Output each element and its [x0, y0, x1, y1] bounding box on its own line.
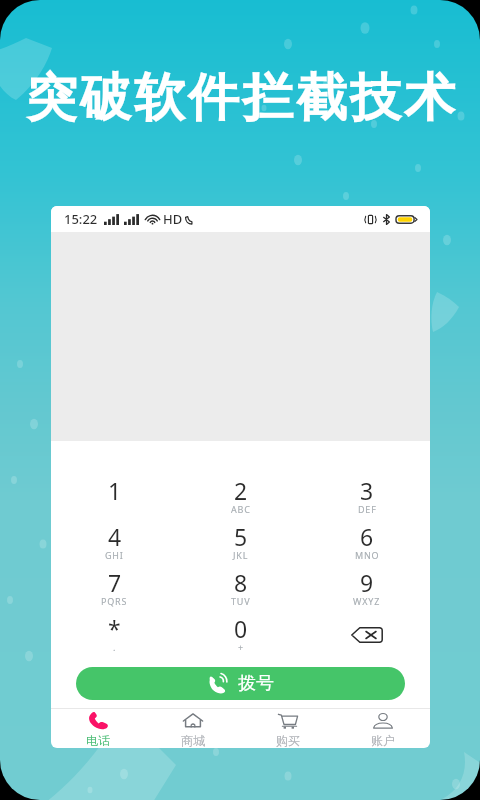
- button[interactable]: 7: [51, 567, 178, 613]
- staticText: 账户: [371, 733, 395, 748]
- button[interactable]: 0: [178, 613, 304, 659]
- button[interactable]: 8: [178, 567, 304, 613]
- other: Backspace: [351, 627, 383, 643]
- staticText: 7: [108, 567, 122, 598]
- staticText: .: [113, 641, 117, 653]
- staticText: 4: [108, 521, 122, 552]
- staticText: MNO: [355, 549, 380, 561]
- staticText: 拨号: [238, 672, 274, 695]
- button[interactable]: 商城: [145, 709, 240, 748]
- button[interactable]: Backspace: [304, 613, 430, 659]
- staticText: 购买: [276, 733, 300, 748]
- staticText: 9: [360, 567, 374, 598]
- button[interactable]: 1: [51, 475, 178, 521]
- staticText: 8: [234, 567, 248, 598]
- button[interactable]: 拨号: [76, 667, 405, 700]
- staticText: GHI: [105, 549, 124, 561]
- staticText: WXYZ: [353, 595, 381, 607]
- button[interactable]: 3: [304, 475, 430, 521]
- button[interactable]: 电话: [51, 709, 145, 748]
- button[interactable]: 2: [178, 475, 304, 521]
- button[interactable]: 账户: [335, 709, 430, 748]
- staticText: DEF: [358, 503, 377, 515]
- staticText: 3: [360, 475, 374, 506]
- staticText: 0: [234, 613, 248, 644]
- button[interactable]: 5: [178, 521, 304, 567]
- staticText: HD: [163, 210, 183, 228]
- staticText: 2: [234, 475, 248, 506]
- staticText: ABC: [231, 503, 251, 515]
- staticText: TUV: [231, 595, 251, 607]
- button[interactable]: 6: [304, 521, 430, 567]
- staticText: PQRS: [101, 595, 128, 607]
- button[interactable]: 4: [51, 521, 178, 567]
- staticText: 商城: [181, 733, 205, 748]
- staticText: 电话: [86, 733, 110, 748]
- button[interactable]: 9: [304, 567, 430, 613]
- staticText: 1: [108, 475, 122, 506]
- staticText: 15:22: [64, 210, 98, 228]
- staticText: +: [238, 641, 244, 653]
- staticText: *: [108, 613, 121, 644]
- staticText: JKL: [233, 549, 249, 561]
- staticText: 5: [234, 521, 248, 552]
- staticText: 6: [360, 521, 374, 552]
- staticText: 突破软件拦截技术: [2, 66, 480, 130]
- button[interactable]: 购买: [240, 709, 335, 748]
- button[interactable]: *: [51, 613, 178, 659]
